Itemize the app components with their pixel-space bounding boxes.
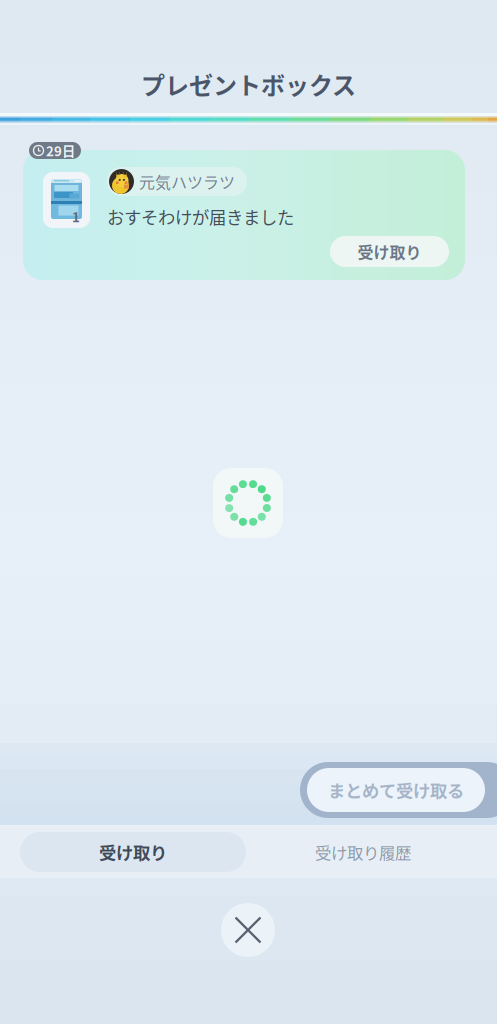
- button[interactable]: まとめて受け取る: [307, 768, 485, 812]
- button[interactable]: 受け取り: [20, 832, 246, 872]
- staticText: 受け取り: [357, 240, 421, 263]
- staticText: 受け取り履歴: [315, 840, 411, 864]
- staticText: プレゼントボックス: [141, 67, 356, 101]
- button[interactable]: 受け取り: [330, 236, 449, 267]
- button[interactable]: 受け取り履歴: [263, 832, 463, 872]
- staticText: 元気ハツラツ: [139, 170, 235, 193]
- staticText: 1: [72, 207, 80, 226]
- button[interactable]: 閉じる: [221, 903, 275, 957]
- staticText: おすそわけが届きました: [107, 204, 294, 229]
- staticText: 29日: [46, 141, 75, 160]
- staticText: まとめて受け取る: [328, 777, 464, 803]
- staticText: 受け取り: [99, 839, 167, 865]
